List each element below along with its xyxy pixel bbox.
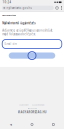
button[interactable]: Home (21, 123, 43, 126)
button[interactable]: Adatvédelem (19, 104, 28, 106)
button[interactable]: More options (60, 5, 63, 10)
staticText: nyilvantarto.gov.hu (6, 6, 32, 10)
staticText: 10:24 (2, 0, 11, 4)
button[interactable]: Impresszum (27, 108, 36, 109)
staticText: ◀ (10, 123, 12, 126)
staticText: Akadálymentesítés (32, 104, 45, 106)
staticText: majd folytassa a belépést. (2, 32, 36, 36)
button[interactable]: Reload page (55, 5, 59, 10)
button[interactable]: Folytatás (2, 51, 62, 60)
staticText: Impresszum (27, 108, 36, 109)
staticText: MAGYARORSZÁG.HU (2, 14, 16, 16)
staticText: Nyilvántartó ügyintézés (2, 21, 35, 25)
staticText: E-mail cím (4, 42, 16, 46)
staticText: Adja meg az ügyfélkapus azonosítóját, (2, 29, 53, 32)
staticText: MAGYARORSZÁG.HU (17, 110, 46, 114)
staticText: Adatvédelem (19, 104, 28, 106)
button[interactable]: Akadálymentesítés (32, 104, 45, 106)
button[interactable]: Recent apps (43, 123, 64, 125)
button[interactable]: Back (0, 123, 21, 126)
